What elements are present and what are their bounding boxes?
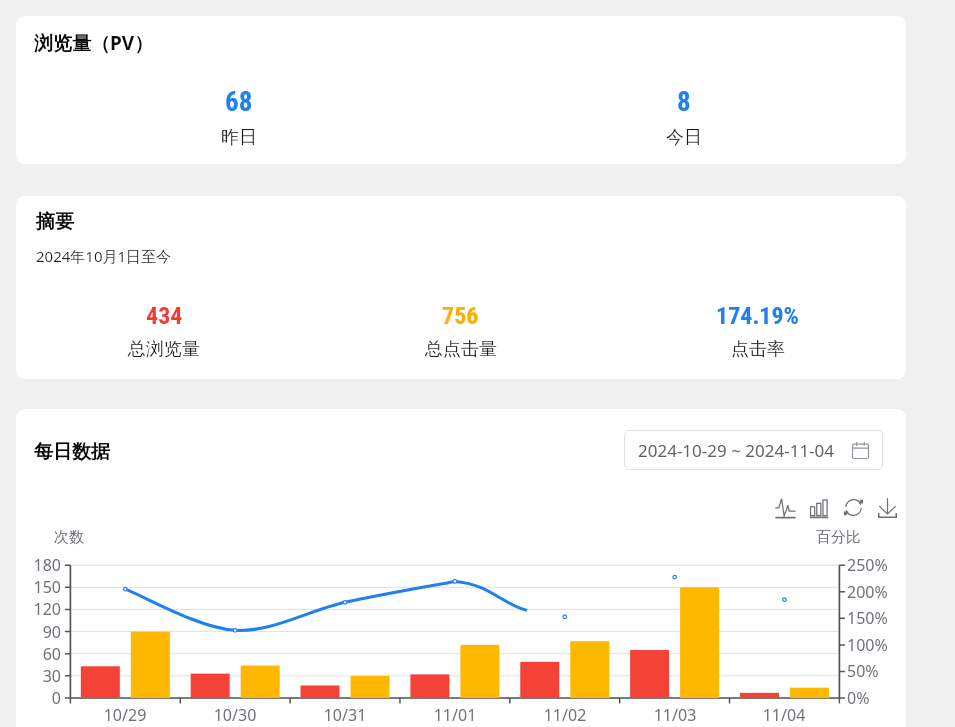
staticText: 10/31 [305,704,385,726]
staticText: 0 [16,687,61,709]
staticText: 30 [16,665,61,687]
staticText: 今日 [666,126,702,149]
staticText: 浏览量（PV） [34,30,154,56]
staticText: 180 [16,554,61,576]
button[interactable]: Refresh [842,496,865,519]
button[interactable]: Line chart [774,496,797,519]
staticText: 50% [847,660,879,682]
button[interactable]: 68 [16,86,461,149]
staticText: 2024-10-29 ~ 2024-11-04 [638,439,835,462]
staticText: 每日数据 [34,440,110,464]
button[interactable]: 174.19% [609,302,906,361]
staticText: 摘要 [36,210,74,234]
button[interactable]: 2024-10-29 ~ 2024-11-04 [624,430,883,470]
staticText: 100% [847,634,888,656]
staticText: 174.19% [716,302,799,330]
staticText: 200% [847,581,888,603]
staticText: 总浏览量 [128,338,200,361]
staticText: 150% [847,607,888,629]
staticText: 0% [847,687,870,709]
staticText: 10/30 [195,704,275,726]
staticText: 434 [146,302,183,330]
staticText: 百分比 [816,528,861,547]
staticText: 90 [16,621,61,643]
staticText: 11/03 [635,704,715,726]
button[interactable]: Bar chart [808,496,831,519]
staticText: 2024年10月1日至今 [36,246,172,266]
staticText: 150 [16,576,61,598]
staticText: 昨日 [221,126,257,149]
staticText: 68 [225,86,253,118]
button[interactable]: 434 [16,302,312,361]
staticText: 11/02 [525,704,605,726]
staticText: 总点击量 [425,338,497,361]
staticText: 120 [16,598,61,620]
staticText: 10/29 [85,704,165,726]
staticText: 250% [847,554,888,576]
staticText: 点击率 [731,338,785,361]
staticText: 次数 [54,528,84,547]
staticText: 60 [16,643,61,665]
button[interactable]: 756 [312,302,609,361]
staticText: 11/04 [744,704,824,726]
button[interactable]: Download [876,496,899,519]
button[interactable]: 8 [461,86,906,149]
staticText: 756 [442,302,479,330]
staticText: 11/01 [415,704,495,726]
staticText: 8 [677,86,691,118]
